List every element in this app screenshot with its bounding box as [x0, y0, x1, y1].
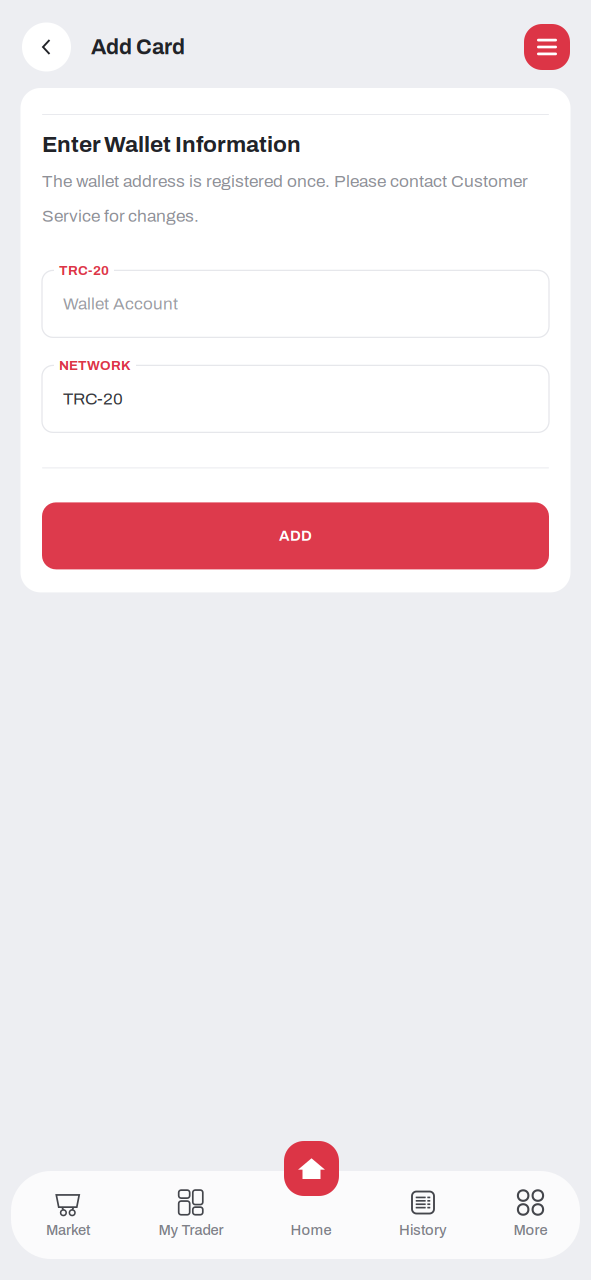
staticText: TRC-20	[59, 263, 109, 278]
staticText: More	[513, 1222, 547, 1238]
staticText: History	[399, 1222, 447, 1238]
button[interactable]: Back	[22, 19, 71, 68]
button[interactable]: Home	[257, 1192, 365, 1238]
button[interactable]: Menu	[524, 21, 570, 67]
button[interactable]: Market	[11, 1192, 125, 1238]
button[interactable]: History	[365, 1192, 481, 1238]
staticText: ADD	[279, 528, 312, 544]
staticText: My Trader	[158, 1222, 223, 1238]
button[interactable]: ADD	[42, 502, 549, 569]
staticText: Home	[290, 1222, 331, 1238]
button[interactable]: Home	[284, 1141, 339, 1196]
staticText: The wallet address is registered once. P…	[42, 172, 527, 225]
staticText: TRC-20	[63, 390, 123, 408]
button[interactable]: My Trader	[125, 1192, 257, 1238]
staticText: Market	[46, 1222, 90, 1238]
staticText: NETWORK	[59, 358, 131, 373]
staticText: Add Card	[91, 35, 185, 59]
staticText: Wallet Account	[63, 295, 178, 313]
staticText: Enter Wallet Information	[42, 132, 301, 157]
button[interactable]: More	[481, 1192, 580, 1238]
